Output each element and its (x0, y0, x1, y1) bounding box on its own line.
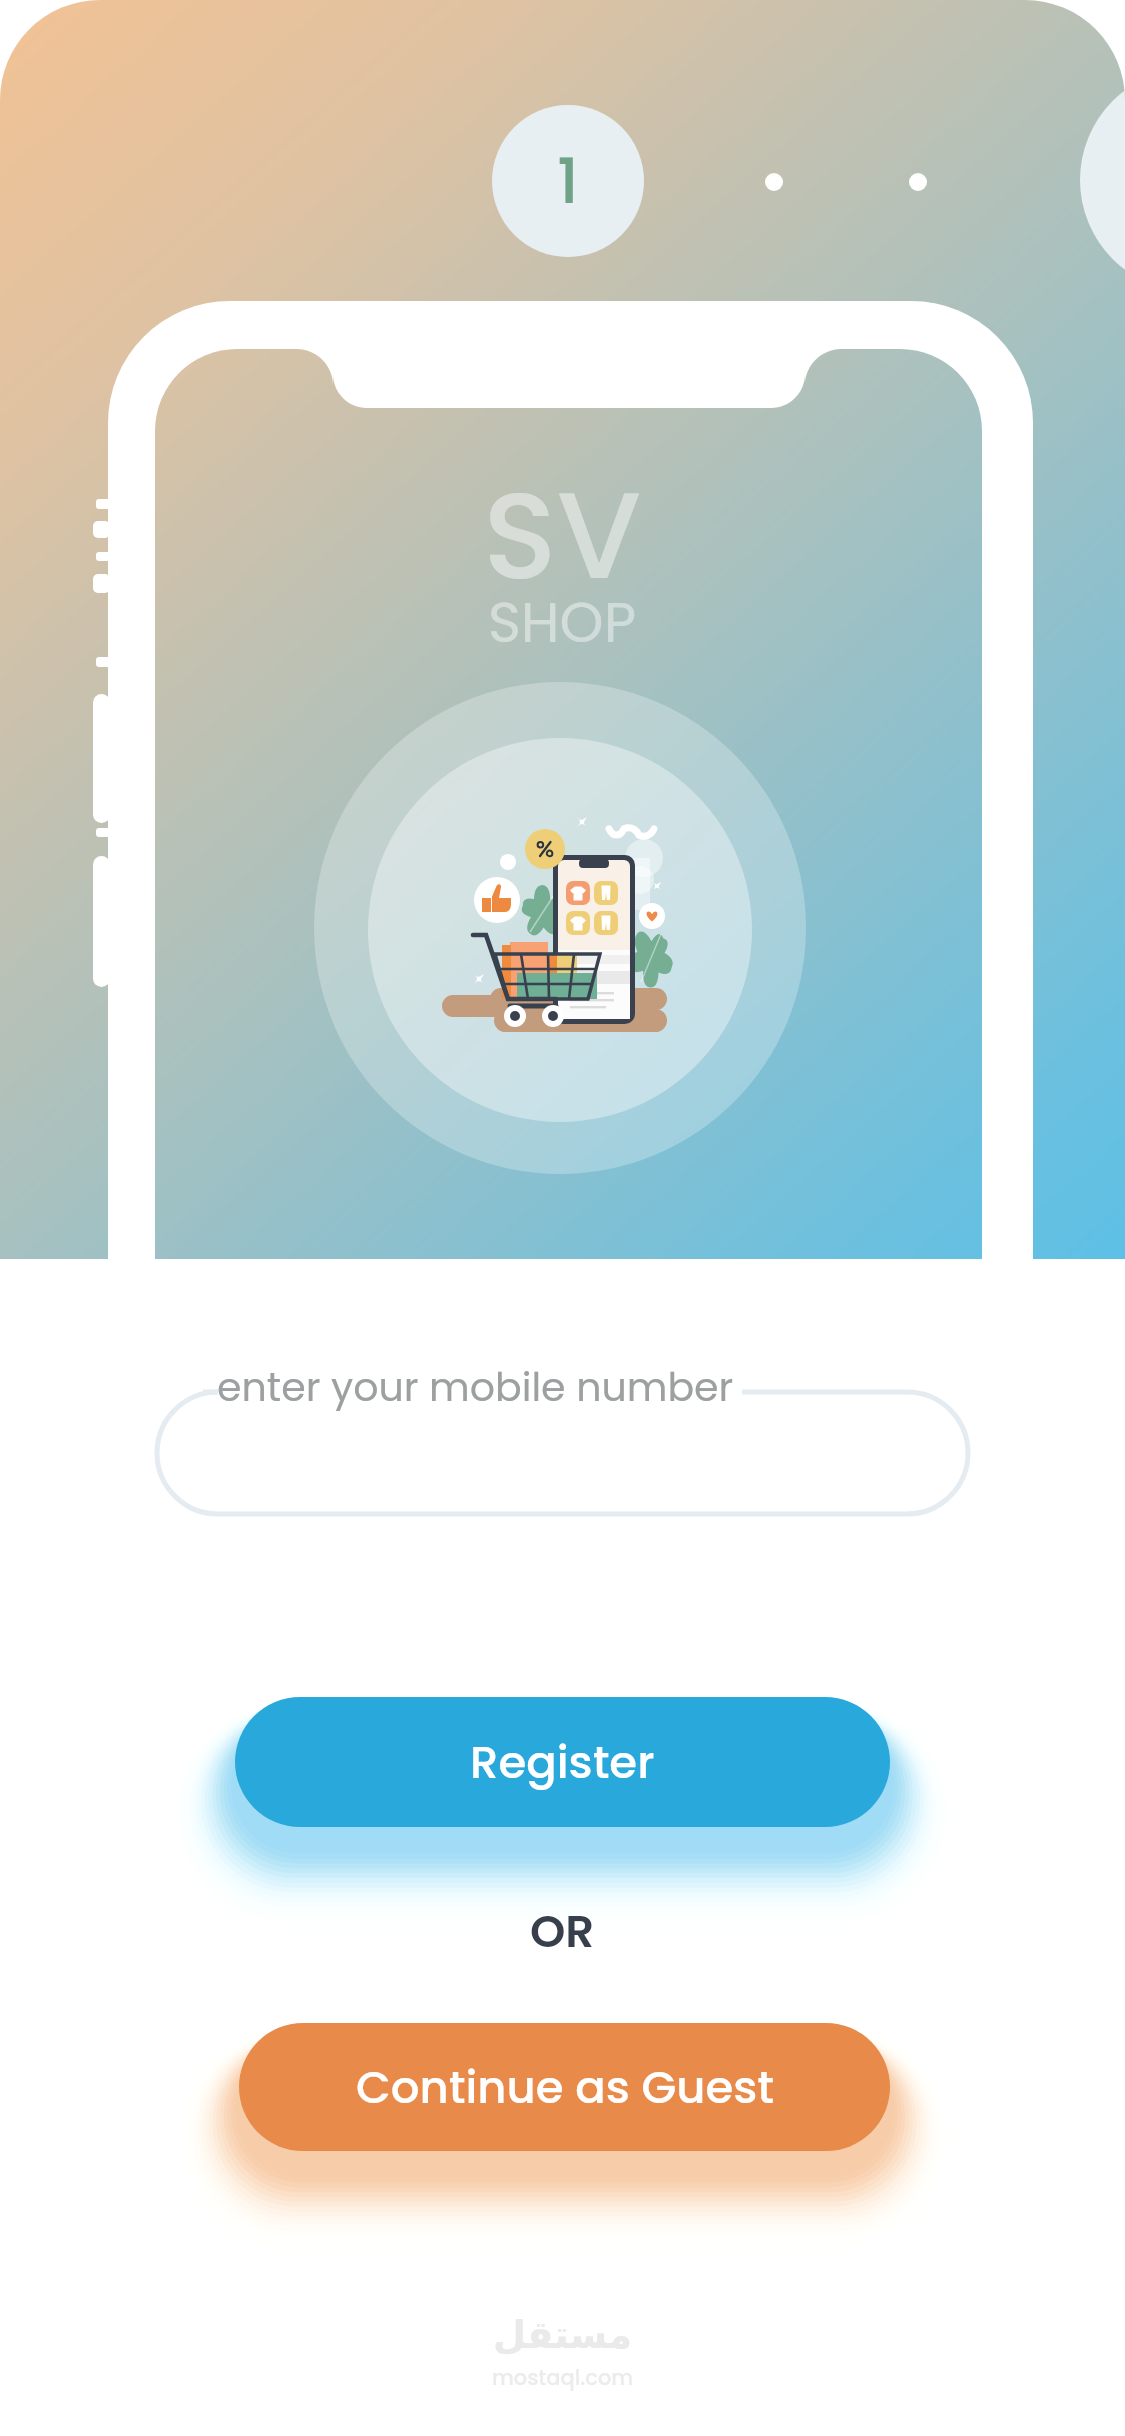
staticText: 1 (557, 138, 579, 225)
staticText: SV (483, 450, 642, 621)
staticText: SHOP (488, 583, 637, 661)
staticText: مستقل (493, 2313, 632, 2357)
staticText: mostaql.com (492, 2363, 634, 2392)
staticText: OR (530, 1900, 595, 1963)
staticText: Continue as Guest (356, 2056, 774, 2119)
staticText: Register (470, 1731, 655, 1794)
button[interactable]: Continue as Guest (239, 2023, 890, 2151)
button[interactable] (157, 1392, 968, 1514)
button[interactable]: Register (235, 1697, 890, 1827)
staticText: enter your mobile number (217, 1360, 734, 1415)
